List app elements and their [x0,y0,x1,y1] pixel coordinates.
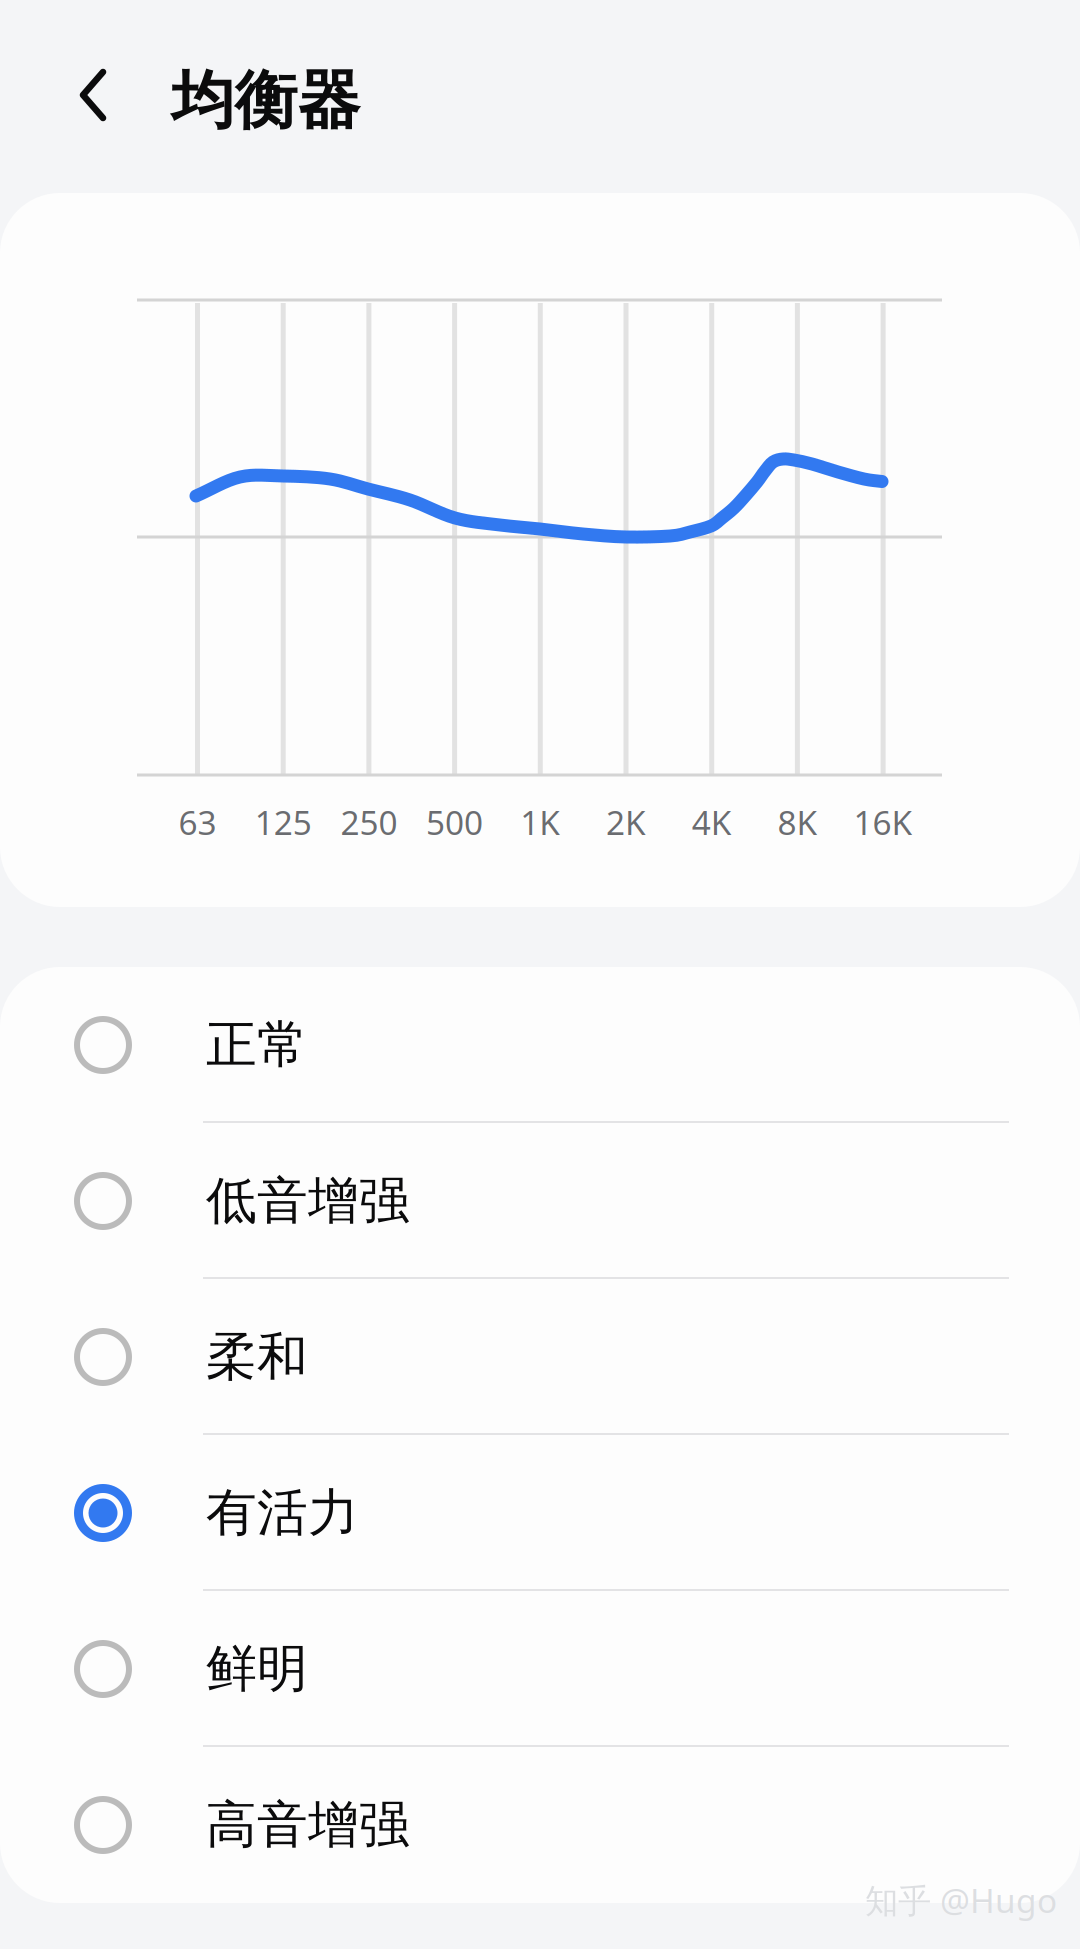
staticText: 250 [340,800,397,844]
staticText: 16K [854,800,913,844]
staticText: 均衡器 [171,62,360,139]
staticText: 2K [606,800,646,844]
staticText: 鲜明 [206,1638,308,1700]
staticText: 63 [178,800,216,844]
staticText: 125 [255,800,312,844]
staticText: 1K [520,800,560,844]
button[interactable]: 正常 [0,967,1080,1123]
button[interactable]: 高音增强 [0,1747,1080,1903]
staticText: 有活力 [206,1482,359,1544]
button[interactable]: 有活力 [0,1435,1080,1591]
staticText: 500 [426,800,483,844]
staticText: 知乎 @Hugo [865,1878,1057,1922]
staticText: 柔和 [206,1326,308,1388]
button[interactable]: 低音增强 [0,1123,1080,1279]
staticText: 8K [777,800,817,844]
staticText: 低音增强 [206,1170,410,1232]
button[interactable]: Back [64,50,122,140]
button[interactable]: 柔和 [0,1279,1080,1435]
staticText: 高音增强 [206,1794,410,1856]
button[interactable]: 鲜明 [0,1591,1080,1747]
staticText: 4K [692,800,732,844]
staticText: 正常 [206,1014,308,1076]
